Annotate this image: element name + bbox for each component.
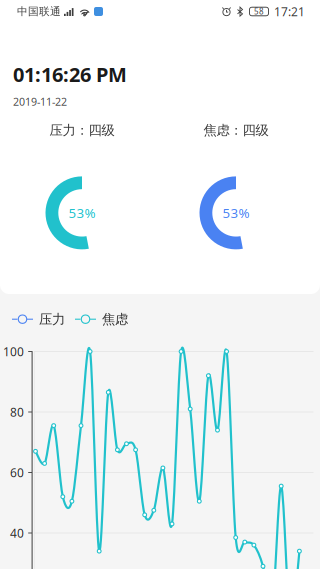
staticText: 53% — [222, 204, 249, 222]
staticText: 80 — [10, 404, 24, 420]
staticText: 压力 — [39, 311, 65, 327]
staticText: 58 — [254, 6, 264, 17]
staticText: 2019-11-22 — [13, 95, 67, 109]
staticText: 压力：四级 — [49, 122, 114, 138]
staticText: 40 — [10, 525, 24, 541]
staticText: 焦虑 — [102, 311, 128, 327]
staticText: 100 — [3, 343, 24, 359]
staticText: 中国联通 — [17, 5, 61, 18]
staticText: 焦虑：四级 — [203, 122, 268, 138]
staticText: 01:16:26 PM — [13, 61, 127, 88]
staticText: 17:21 — [274, 3, 305, 19]
staticText: 60 — [10, 464, 24, 480]
staticText: 53% — [68, 204, 95, 222]
